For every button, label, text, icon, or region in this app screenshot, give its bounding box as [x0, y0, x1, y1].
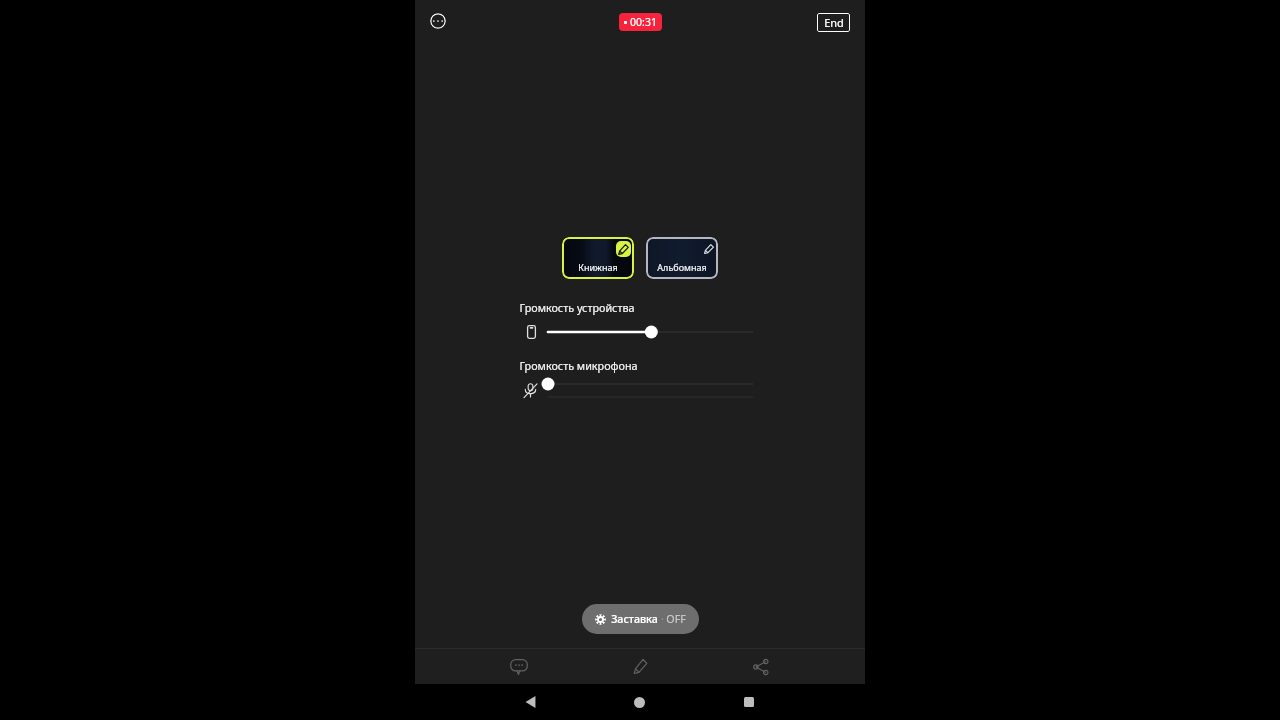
button[interactable]: Share — [737, 649, 785, 684]
staticText: Громкость микрофона — [519, 358, 638, 373]
staticText: · — [661, 612, 664, 627]
button[interactable]: Громкость устройства — [548, 324, 753, 340]
button[interactable]: Громкость микрофона — [548, 376, 753, 392]
button[interactable]: Mute device — [523, 324, 539, 340]
staticText: Книжная — [578, 261, 618, 273]
button[interactable]: Back — [508, 684, 552, 720]
button[interactable]: Recents — [727, 684, 771, 720]
button[interactable]: Mute microphone — [522, 382, 538, 398]
staticText: End — [824, 15, 844, 30]
button[interactable]: Книжная — [562, 237, 634, 279]
staticText: Громкость устройства — [519, 300, 635, 315]
button[interactable]: Home — [617, 684, 661, 720]
button[interactable]: Заставка — [582, 604, 699, 634]
button[interactable]: End — [817, 13, 850, 32]
staticText: 00:31 — [630, 15, 657, 29]
staticText: OFF — [666, 612, 686, 627]
staticText: Заставка — [611, 612, 658, 627]
button[interactable]: Chat — [495, 649, 543, 684]
button[interactable]: Альбомная — [646, 237, 718, 279]
button[interactable]: Draw — [616, 649, 664, 684]
button[interactable]: 00:31 — [619, 13, 662, 31]
staticText: Альбомная — [657, 261, 707, 273]
button[interactable]: More options — [430, 13, 446, 29]
